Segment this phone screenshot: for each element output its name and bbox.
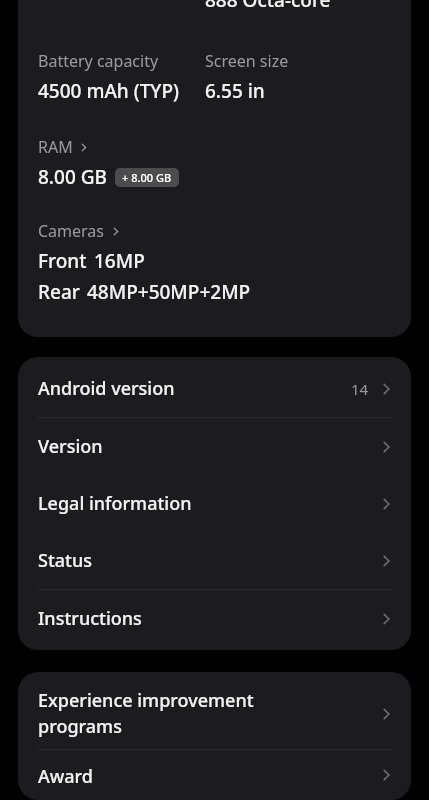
staticText: Instructions bbox=[38, 606, 377, 631]
staticText: 14 bbox=[351, 379, 369, 399]
staticText: 8.00 GB bbox=[38, 164, 107, 190]
staticText: Rear bbox=[38, 279, 80, 305]
button[interactable]: Legal information bbox=[18, 475, 411, 532]
staticText: + 8.00 GB bbox=[122, 170, 172, 185]
staticText: Cameras bbox=[38, 220, 105, 242]
staticText: Legal information bbox=[38, 491, 377, 516]
button[interactable]: Instructions bbox=[18, 590, 411, 647]
staticText: Screen size bbox=[205, 50, 289, 72]
staticText: Android version bbox=[38, 376, 351, 401]
button[interactable]: Experience improvement programs bbox=[18, 682, 411, 749]
staticText: 6.55 in bbox=[205, 78, 265, 104]
button[interactable]: Version bbox=[18, 418, 411, 475]
button[interactable]: Status bbox=[18, 532, 411, 589]
staticText: Status bbox=[38, 548, 377, 573]
staticText: Experience improvement programs bbox=[38, 688, 377, 739]
staticText: 4500 mAh (TYP) bbox=[38, 78, 179, 104]
button[interactable]: Award bbox=[18, 750, 411, 800]
staticText: Battery capacity bbox=[38, 50, 159, 72]
staticText: Front bbox=[38, 248, 87, 274]
staticText: Award bbox=[38, 764, 94, 786]
button[interactable]: Cameras bbox=[18, 220, 411, 305]
staticText: Version bbox=[38, 434, 377, 459]
button[interactable]: RAM bbox=[18, 136, 411, 190]
staticText: 48MP+50MP+2MP bbox=[87, 279, 251, 305]
staticText: 16MP bbox=[94, 248, 145, 274]
button[interactable]: Android version bbox=[18, 360, 411, 417]
staticText: RAM bbox=[38, 136, 73, 158]
staticText: 888 Octa-core bbox=[205, 0, 331, 13]
